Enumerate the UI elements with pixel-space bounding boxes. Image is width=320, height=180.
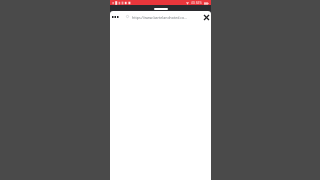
button[interactable]: Close [201, 12, 211, 21]
staticText: https://www.bartelandnoted.co… [132, 15, 192, 20]
button[interactable]: More options [111, 12, 120, 21]
staticText: 4G 84% [191, 1, 202, 5]
